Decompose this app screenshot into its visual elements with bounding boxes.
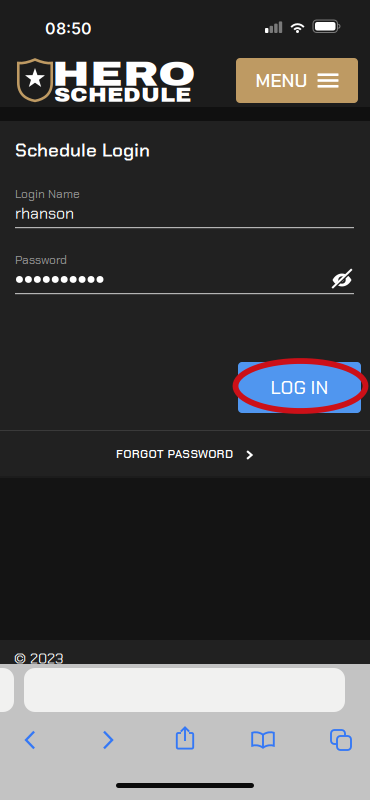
staticText: Password	[15, 252, 67, 268]
staticText: © 2023	[14, 649, 63, 668]
button[interactable]: Tabs	[315, 718, 367, 762]
staticText: Login Name	[15, 186, 80, 202]
button[interactable]: Forward	[82, 718, 134, 762]
staticText: Schedule Login	[15, 138, 150, 162]
button[interactable]: Bookmarks	[237, 718, 289, 762]
button[interactable]: Show password	[332, 270, 352, 289]
button[interactable]: MENU	[236, 58, 358, 103]
staticText: 08:50	[45, 19, 92, 38]
button[interactable]: LOG IN	[238, 362, 361, 413]
staticText: LOG IN	[270, 375, 328, 400]
staticText: rhanson	[15, 203, 74, 224]
button[interactable]: FORGOT PASSWORD	[0, 431, 370, 478]
staticText: SCHEDULE	[54, 83, 191, 108]
button[interactable]: Share	[159, 716, 211, 760]
staticText: FORGOT PASSWORD	[116, 446, 233, 462]
staticText: MENU	[255, 68, 307, 93]
button[interactable]: Back	[4, 718, 56, 762]
staticText: HERO	[52, 55, 196, 104]
